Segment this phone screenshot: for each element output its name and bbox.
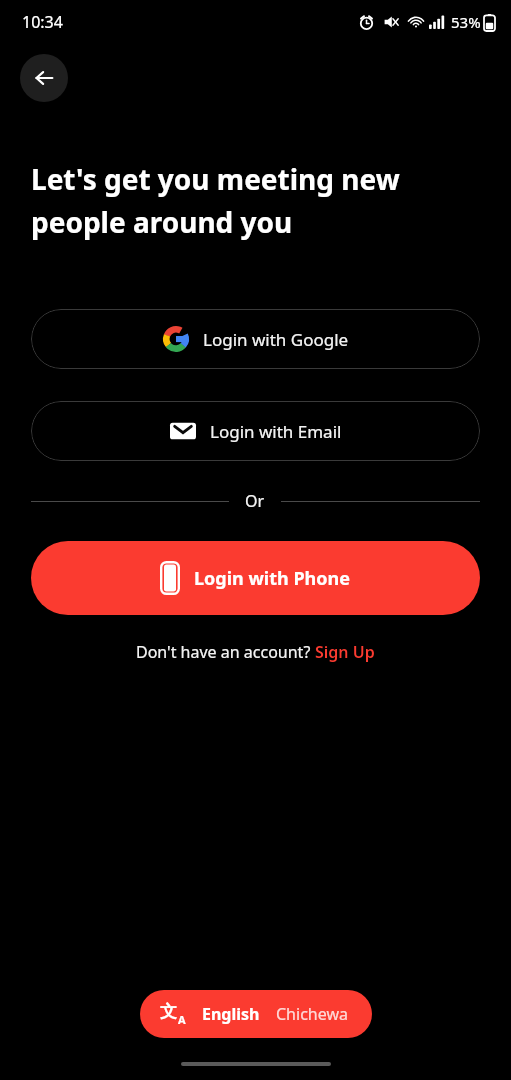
staticText: Chichewa [276,1003,348,1025]
staticText: Don't have an account? [136,641,315,663]
button[interactable]: Sign Up [315,641,375,663]
staticText: 10:34 [22,11,63,33]
button[interactable]: Login with Google [31,309,480,369]
staticText: English [202,1003,260,1025]
button[interactable]: Back [20,54,68,102]
staticText: 文 [160,1001,177,1022]
staticText: 53% [451,12,481,32]
staticText: Login with Email [210,420,342,443]
staticText: A [178,1012,186,1027]
staticText: Let's get you meeting new people around … [31,160,485,241]
button[interactable]: Login with Phone [31,541,480,615]
staticText: Or [245,490,265,512]
staticText: Sign Up [315,641,375,663]
staticText: Login with Google [203,328,349,351]
button[interactable]: 文 [140,990,372,1038]
staticText: Login with Phone [194,566,351,591]
button[interactable]: Login with Email [31,401,480,461]
